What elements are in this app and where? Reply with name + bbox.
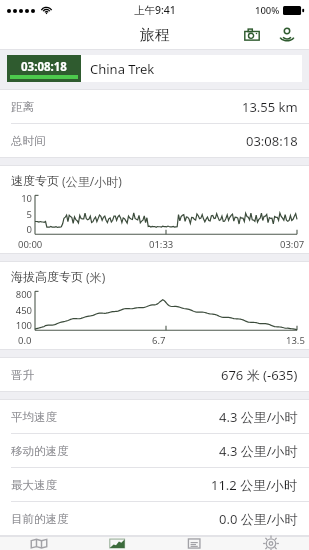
staticText: 5 (5, 208, 32, 221)
staticText: 03:07 (280, 238, 305, 251)
button[interactable]: 平均速度 (11, 400, 298, 433)
staticText: 03:08:18 (246, 132, 298, 150)
staticText: 最大速度 (11, 478, 57, 492)
staticText: China Trek (90, 60, 155, 78)
button[interactable]: 03:08:18 (7, 55, 302, 82)
button[interactable]: 最大速度 (11, 468, 298, 501)
button[interactable]: 晋升 (11, 358, 298, 391)
staticText: 10 (5, 192, 32, 205)
button[interactable]: 速度专页 (0, 165, 309, 254)
staticText: 4.3 公里/小时 (219, 408, 298, 426)
staticText: (米) (83, 269, 106, 285)
staticText: 100% (255, 4, 280, 17)
button[interactable]: 地图 (0, 537, 78, 550)
staticText: 目前的速度 (11, 512, 69, 526)
staticText: 0.0 公里/小时 (219, 510, 298, 528)
staticText: 450 (5, 304, 32, 317)
staticText: 4.3 公里/小时 (219, 442, 298, 460)
staticText: 海拔高度专页 (11, 269, 83, 284)
button[interactable]: 海拔高度专页 (0, 261, 309, 350)
staticText: 13.55 km (242, 98, 298, 116)
button[interactable]: 保存 (155, 537, 232, 550)
staticText: 00:00 (18, 238, 43, 251)
staticText: 移动的速度 (11, 444, 69, 458)
staticText: 距离 (11, 100, 34, 114)
staticText: 0.0 (18, 334, 32, 347)
staticText: 6.7 (152, 334, 166, 347)
staticText: 01:33 (149, 238, 174, 251)
staticText: (公里/小时) (59, 173, 122, 189)
button[interactable]: 总时间 (11, 124, 298, 157)
staticText: 上午9:41 (134, 3, 176, 17)
button[interactable]: Share (274, 22, 300, 48)
button[interactable]: Camera (239, 22, 265, 48)
staticText: 100 (5, 319, 32, 332)
staticText: 11.2 公里/小时 (211, 476, 298, 494)
staticText: 总时间 (11, 134, 46, 148)
staticText: 平均速度 (11, 410, 57, 424)
button[interactable]: 设置 (232, 537, 309, 550)
staticText: 03:08:18 (21, 59, 67, 75)
button[interactable]: 目前的速度 (11, 502, 298, 535)
staticText: 800 (5, 288, 32, 301)
staticText: 晋升 (11, 368, 34, 382)
button[interactable]: 移动的速度 (11, 434, 298, 467)
staticText: 0 (5, 223, 32, 236)
staticText: 旅程 (140, 26, 170, 45)
staticText: 速度专页 (11, 173, 59, 188)
staticText: 13.5 (286, 334, 305, 347)
button[interactable]: 距离 (11, 90, 298, 123)
staticText: 676 米 (-635) (221, 366, 298, 384)
button[interactable]: 旅程 (78, 537, 155, 550)
